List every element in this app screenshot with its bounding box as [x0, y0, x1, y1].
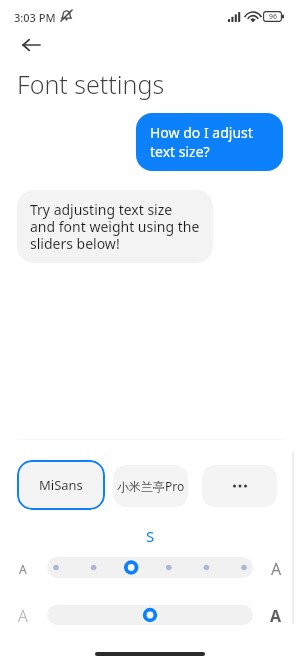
other: Notifications off: [60, 9, 73, 22]
button[interactable]: How do I adjust text size?: [136, 113, 283, 171]
staticText: A: [270, 605, 282, 627]
button[interactable]: MiSans: [17, 460, 105, 510]
staticText: A: [19, 561, 27, 577]
button[interactable]: Back: [12, 26, 50, 64]
staticText: 小米兰亭Pro: [117, 478, 185, 494]
button[interactable]: Font weight slider: [47, 605, 253, 625]
staticText: How do I adjust text size?: [150, 123, 253, 161]
button[interactable]: Try adjusting text size and font weight …: [17, 190, 213, 263]
staticText: A: [271, 558, 282, 580]
button[interactable]: Text size slider: [47, 557, 253, 578]
staticText: 3:03 PM: [14, 10, 56, 25]
staticText: A: [18, 605, 28, 627]
staticText: 96: [269, 12, 278, 22]
staticText: Try adjusting text size and font weight …: [30, 200, 200, 253]
staticText: MiSans: [39, 476, 83, 494]
staticText: S: [146, 526, 155, 546]
button[interactable]: 小米兰亭Pro: [113, 465, 188, 507]
button[interactable]: More fonts: [202, 465, 277, 507]
staticText: Font settings: [17, 67, 165, 101]
